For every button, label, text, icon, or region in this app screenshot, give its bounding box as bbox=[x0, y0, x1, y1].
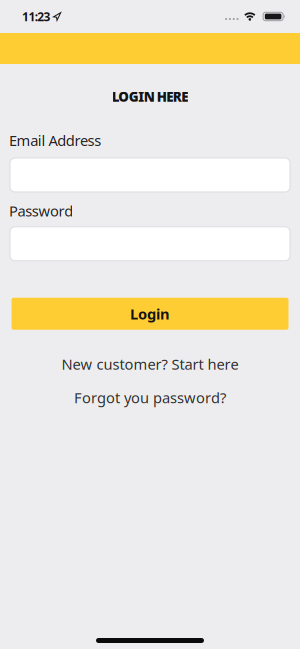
button[interactable]: Login bbox=[11, 298, 288, 330]
button[interactable]: New customer? Start here bbox=[0, 354, 300, 374]
staticText: Password bbox=[9, 201, 73, 220]
button[interactable]: Email Address bbox=[0, 158, 300, 192]
staticText: Email Address bbox=[9, 130, 101, 150]
button[interactable]: Forgot you password? bbox=[0, 388, 300, 407]
staticText: 11:23 bbox=[22, 8, 51, 24]
staticText: New customer? Start here bbox=[61, 354, 238, 374]
button[interactable]: Password bbox=[0, 227, 300, 261]
staticText: Forgot you password? bbox=[74, 388, 226, 407]
staticText: Login bbox=[130, 304, 170, 323]
staticText: LOGIN HERE bbox=[112, 88, 188, 105]
